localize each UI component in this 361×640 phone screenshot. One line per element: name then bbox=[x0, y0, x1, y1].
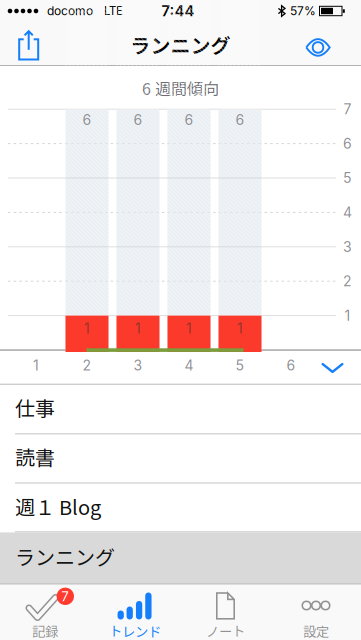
staticText: ノート bbox=[206, 621, 245, 640]
staticText: 6 bbox=[82, 111, 91, 128]
staticText: 5 bbox=[235, 357, 244, 374]
button[interactable]: 週１ Blog bbox=[0, 482, 361, 530]
button[interactable]: ノート bbox=[180, 584, 270, 640]
staticText: 仕事 bbox=[15, 393, 55, 422]
staticText: 7 bbox=[343, 101, 351, 118]
staticText: 3 bbox=[343, 238, 352, 255]
staticText: 4 bbox=[343, 204, 352, 221]
staticText: 2 bbox=[82, 357, 91, 374]
staticText: 6 bbox=[286, 357, 295, 374]
staticText: 1 bbox=[84, 320, 90, 337]
staticText: 1 bbox=[186, 320, 192, 337]
staticText: 5 bbox=[343, 169, 352, 186]
staticText: 57% bbox=[290, 4, 316, 18]
staticText: docomo bbox=[47, 4, 93, 18]
staticText: 週１ Blog bbox=[15, 492, 101, 521]
staticText: 6 bbox=[133, 111, 142, 128]
button[interactable]: 設定 bbox=[271, 584, 361, 640]
staticText: 1 bbox=[33, 357, 39, 374]
staticText: 7 bbox=[61, 588, 69, 604]
button[interactable]: Collapse chart bbox=[321, 363, 343, 373]
staticText: 6 bbox=[184, 111, 193, 128]
staticText: 6 bbox=[235, 111, 244, 128]
button[interactable]: トレンド bbox=[90, 584, 180, 640]
staticText: 設定 bbox=[303, 621, 329, 640]
button[interactable]: ランニング bbox=[0, 532, 361, 583]
staticText: ランニング bbox=[15, 542, 115, 571]
staticText: 6 週間傾向 bbox=[142, 76, 219, 100]
button[interactable]: Share bbox=[14, 30, 43, 61]
staticText: 7:44 bbox=[161, 2, 194, 20]
staticText: 2 bbox=[343, 273, 352, 290]
staticText: 1 bbox=[135, 320, 141, 337]
staticText: LTE bbox=[104, 4, 123, 18]
staticText: トレンド bbox=[109, 621, 161, 640]
button[interactable]: 仕事 bbox=[0, 383, 361, 431]
button[interactable]: 7 bbox=[0, 584, 90, 640]
staticText: ランニング bbox=[130, 30, 230, 59]
button[interactable]: Show bbox=[305, 38, 330, 57]
staticText: 記録 bbox=[32, 621, 58, 640]
staticText: 1 bbox=[237, 320, 243, 337]
staticText: 4 bbox=[184, 357, 193, 374]
button[interactable]: 読書 bbox=[0, 432, 361, 480]
staticText: 3 bbox=[133, 357, 142, 374]
staticText: 1 bbox=[344, 307, 350, 324]
staticText: 6 bbox=[343, 135, 352, 152]
staticText: 読書 bbox=[15, 442, 55, 471]
